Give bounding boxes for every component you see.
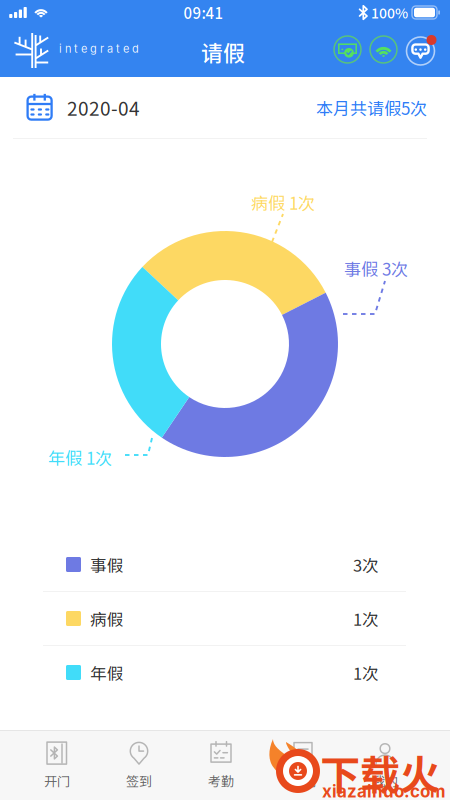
staticText: 本月共请假5次 — [316, 95, 427, 120]
staticText: 请假 — [201, 36, 245, 68]
staticText: 3次 — [353, 553, 379, 576]
button[interactable]: 我的 — [344, 730, 426, 800]
staticText: 审批 — [290, 771, 316, 790]
button[interactable]: Wi-Fi — [370, 36, 397, 63]
staticText: 下载火 — [320, 743, 440, 800]
staticText: 事假 — [90, 553, 124, 576]
staticText: 09:41 — [183, 2, 223, 23]
staticText: 签到 — [126, 771, 152, 790]
staticText: 我的 — [372, 771, 398, 790]
staticText: 年假 1次 — [48, 445, 112, 470]
button[interactable]: Access card — [334, 36, 361, 63]
button[interactable]: 事假 — [43, 538, 406, 591]
button[interactable]: Messages — [405, 36, 436, 66]
staticText: 年假 — [90, 661, 124, 684]
button[interactable]: 签到 — [98, 730, 180, 800]
staticText: i n t e g r a t e d — [59, 42, 139, 55]
button[interactable]: 病假 — [43, 592, 406, 645]
button[interactable]: 审批 — [262, 730, 344, 800]
staticText: 2020-04 — [67, 94, 140, 121]
button[interactable]: 开门 — [16, 730, 98, 800]
staticText: 事假 3次 — [344, 256, 408, 281]
staticText: 病假 1次 — [251, 190, 315, 215]
staticText: 考勤 — [208, 771, 234, 790]
button[interactable]: 2020-04 — [0, 77, 450, 138]
button[interactable]: 考勤 — [180, 730, 262, 800]
staticText: 1次 — [353, 607, 379, 630]
staticText: 100% — [371, 2, 408, 23]
staticText: xiazaihuo.com — [322, 781, 446, 800]
button[interactable]: 年假 — [43, 646, 406, 699]
staticText: 1次 — [353, 661, 379, 684]
staticText: 开门 — [44, 771, 70, 790]
staticText: 病假 — [90, 607, 124, 630]
